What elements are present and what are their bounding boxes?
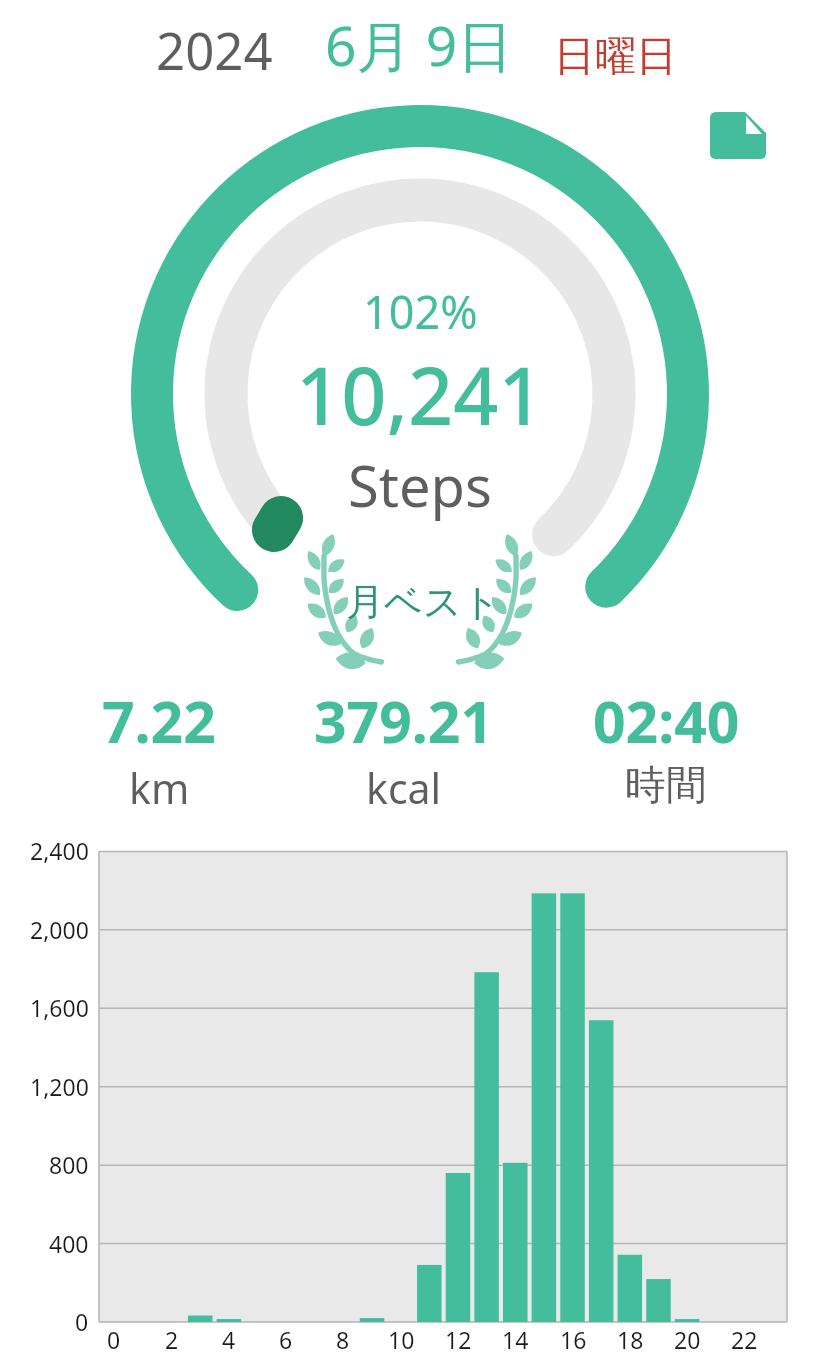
- staticText: kcal: [366, 760, 442, 816]
- button[interactable]: Notes: [700, 104, 780, 172]
- staticText: 0: [107, 1324, 121, 1355]
- staticText: 6: [279, 1324, 293, 1355]
- staticText: 12: [445, 1324, 472, 1355]
- staticText: 10: [388, 1324, 415, 1355]
- staticText: 0: [75, 1306, 89, 1337]
- staticText: 1,600: [30, 992, 89, 1023]
- staticText: 18: [617, 1324, 644, 1355]
- staticText: 月ベスト: [346, 578, 501, 626]
- staticText: 379.21: [314, 682, 494, 760]
- staticText: 102%: [363, 281, 478, 342]
- staticText: 2,400: [30, 835, 89, 866]
- staticText: 2,000: [30, 914, 89, 945]
- staticText: 2024: [156, 15, 273, 84]
- staticText: 2: [165, 1324, 179, 1355]
- staticText: 16: [560, 1324, 587, 1355]
- staticText: 14: [502, 1324, 529, 1355]
- button[interactable]: 7.22: [34, 682, 284, 816]
- staticText: Steps: [348, 447, 492, 523]
- staticText: 20: [674, 1324, 701, 1355]
- staticText: 4: [222, 1324, 236, 1355]
- staticText: 22: [731, 1324, 758, 1355]
- staticText: km: [129, 760, 190, 816]
- button[interactable]: 02:40: [541, 682, 791, 812]
- staticText: 02:40: [593, 682, 740, 760]
- staticText: 6月 9日: [325, 7, 513, 82]
- staticText: 1,200: [30, 1071, 89, 1102]
- button[interactable]: 379.21: [279, 682, 529, 816]
- staticText: 800: [49, 1149, 89, 1180]
- staticText: 7.22: [102, 682, 216, 760]
- staticText: 日曜日: [554, 31, 677, 83]
- button[interactable]: 2024: [0, 0, 840, 100]
- staticText: 10,241: [296, 341, 544, 449]
- staticText: 時間: [625, 760, 707, 812]
- staticText: 400: [49, 1228, 89, 1259]
- staticText: 8: [336, 1324, 350, 1355]
